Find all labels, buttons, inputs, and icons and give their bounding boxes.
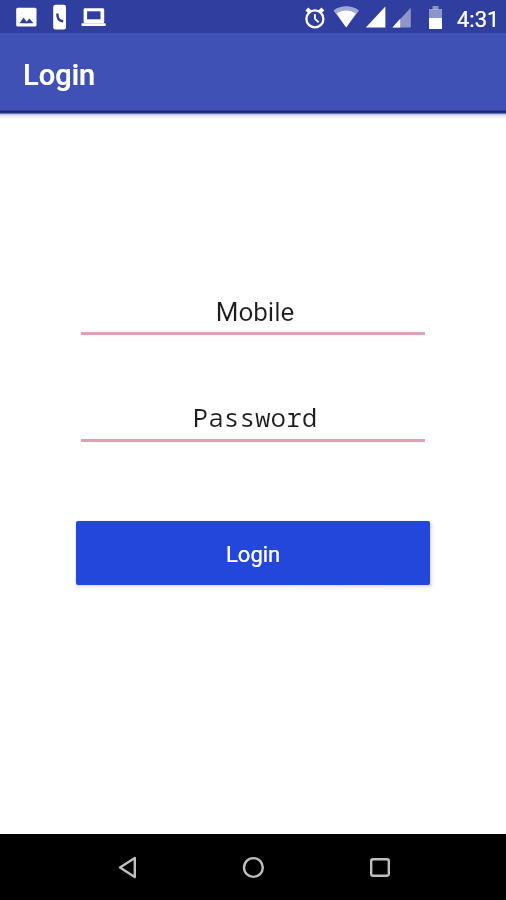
button[interactable]: Login — [76, 521, 430, 585]
staticText: Login — [226, 542, 281, 568]
button[interactable]: Mobile — [0, 290, 506, 338]
button[interactable]: Password — [0, 397, 506, 445]
staticText: Mobile — [2, 297, 506, 327]
button[interactable]: Home — [213, 834, 293, 900]
button[interactable]: Recent apps — [340, 834, 420, 900]
button[interactable]: Back — [88, 834, 168, 900]
staticText: Login — [23, 58, 96, 92]
staticText: Password — [2, 399, 506, 434]
staticText: 4:31 — [457, 7, 500, 33]
